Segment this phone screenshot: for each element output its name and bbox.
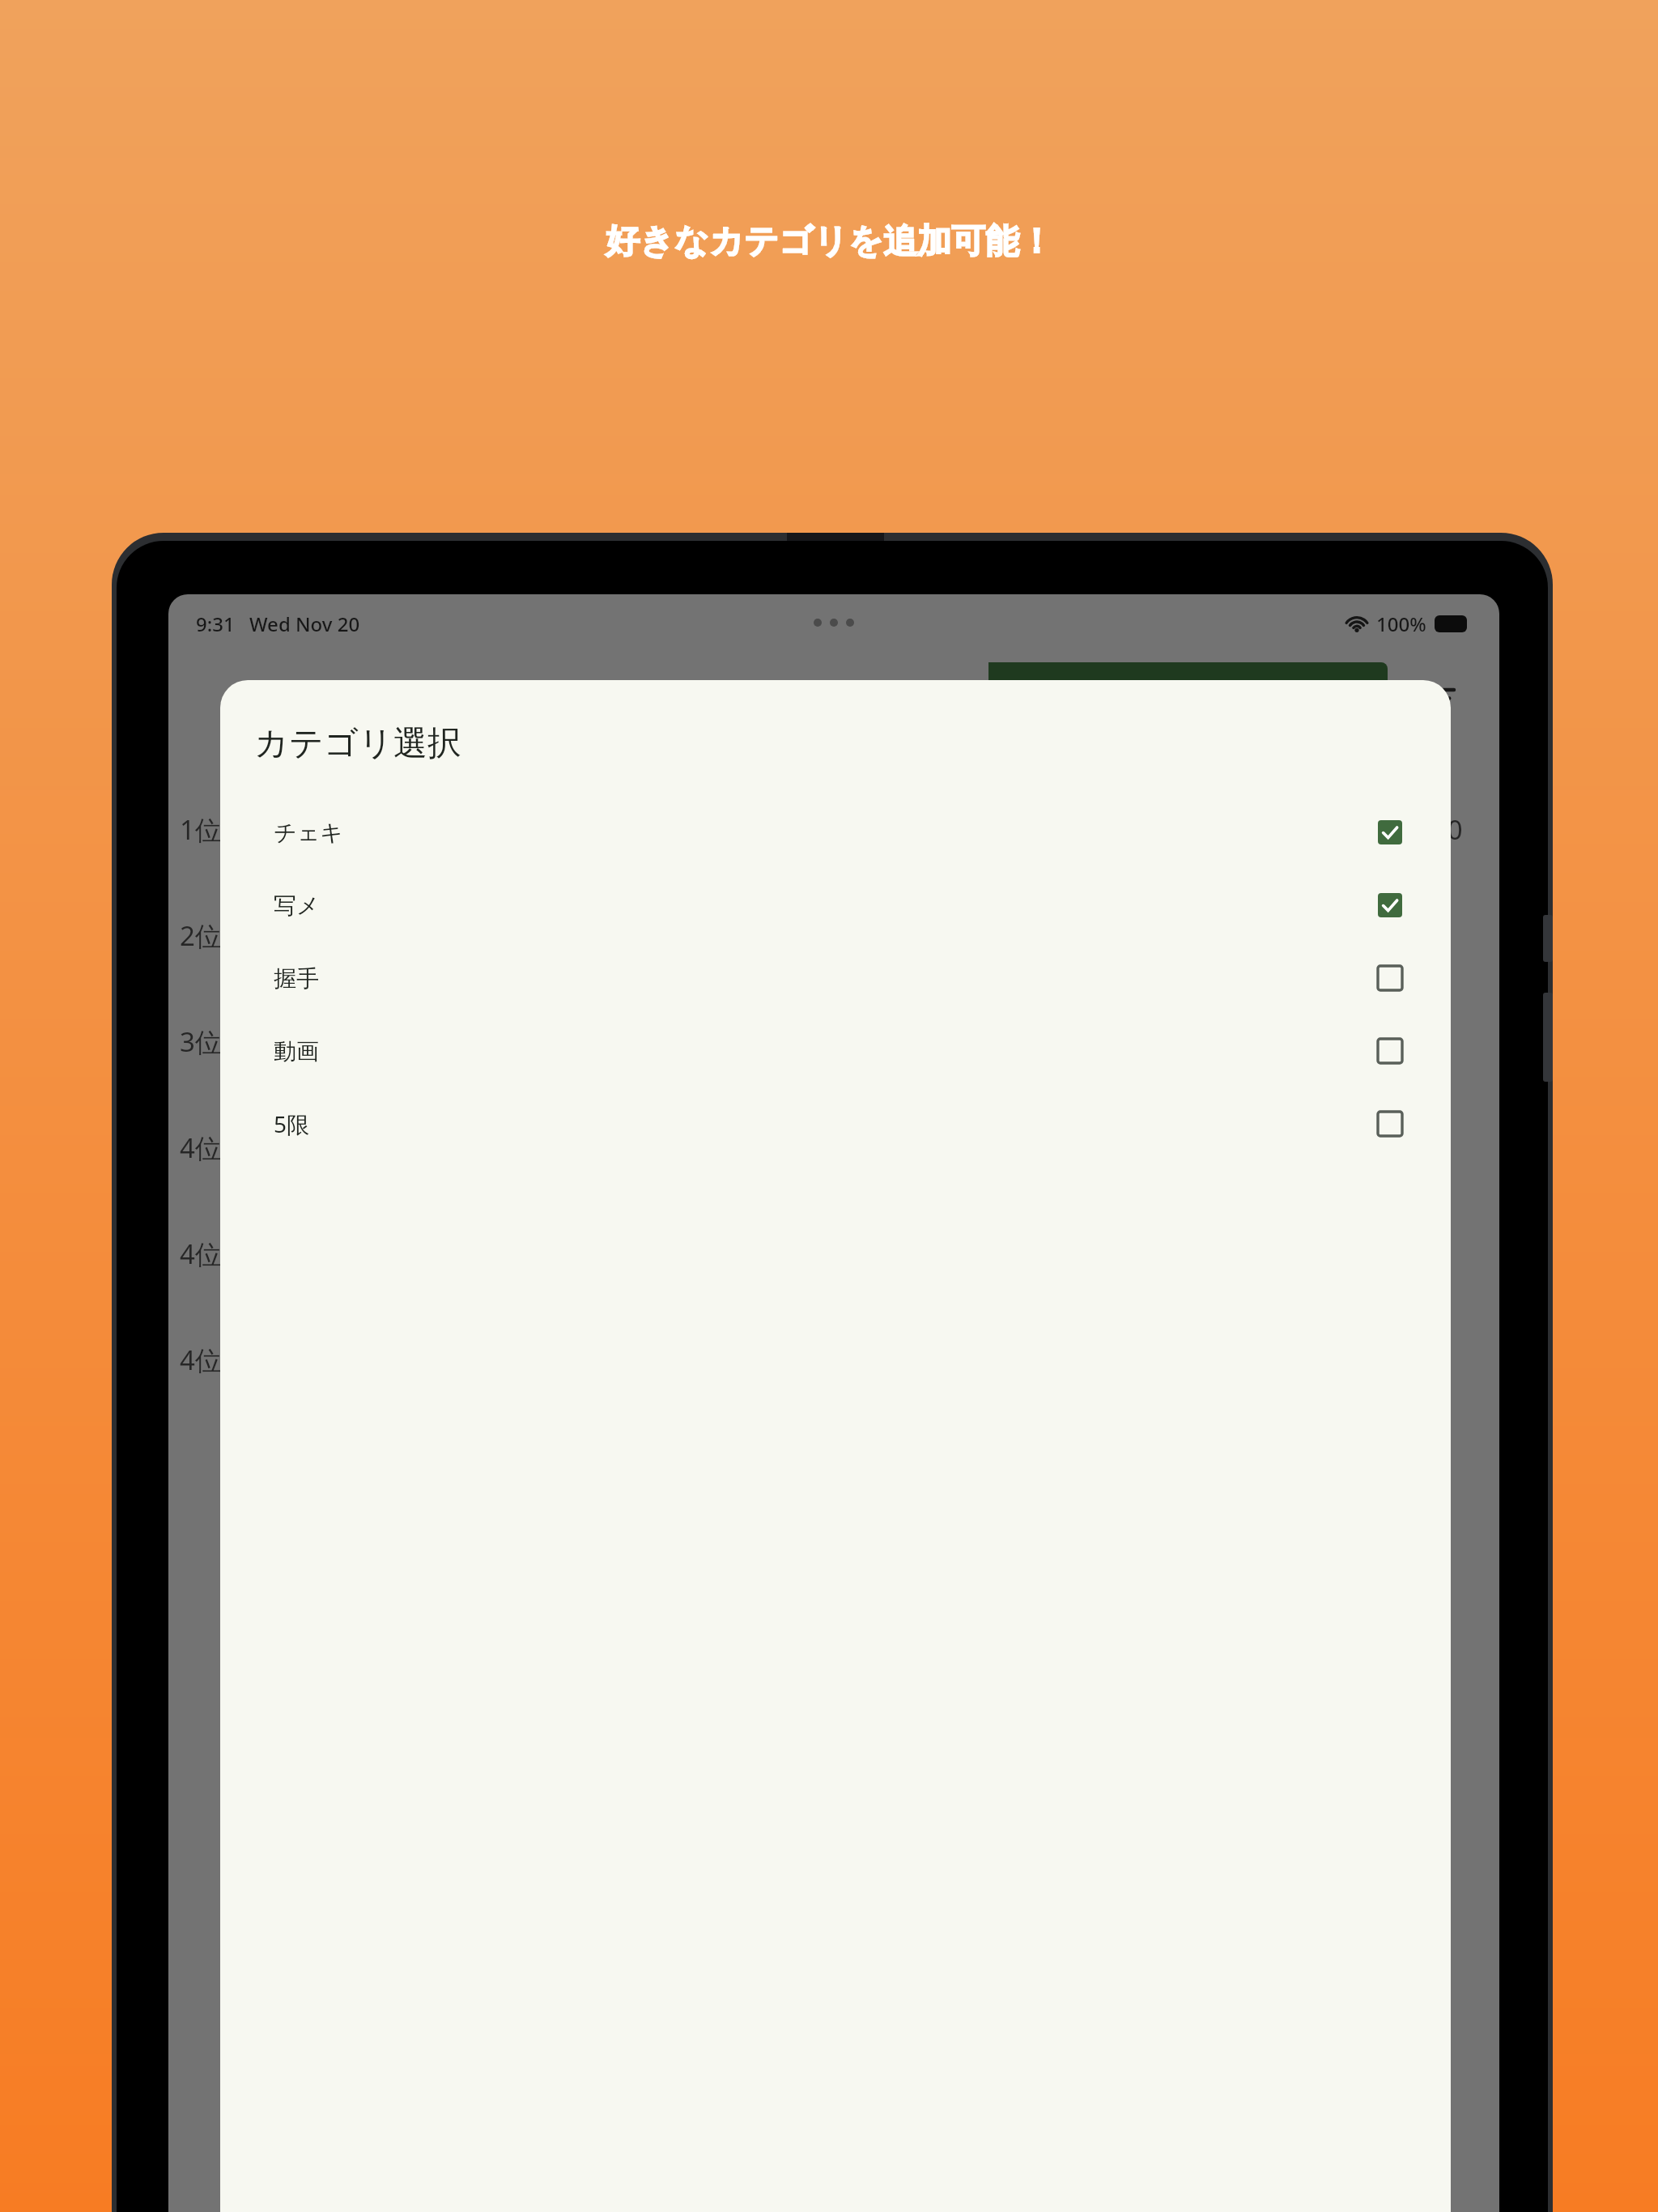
button[interactable]: [988, 662, 1388, 732]
staticText: 9:31: [196, 610, 235, 637]
staticText: チェキ: [274, 819, 343, 847]
staticText: Wed Nov 20: [249, 610, 360, 637]
staticText: 1位: [180, 811, 222, 848]
staticText: 2位: [180, 917, 222, 954]
staticText: 3位: [180, 1023, 222, 1060]
staticText: 100%: [1376, 610, 1426, 637]
button[interactable]: 写メ: [220, 869, 1451, 942]
button[interactable]: 5限: [220, 1087, 1451, 1160]
button[interactable]: 動画: [220, 1015, 1451, 1087]
button[interactable]: [589, 662, 988, 732]
staticText: 写メ: [274, 891, 320, 920]
staticText: 握手: [274, 964, 319, 993]
staticText: 4位: [180, 1236, 222, 1272]
button[interactable]: 握手: [220, 942, 1451, 1015]
staticText: 4位: [180, 1129, 222, 1166]
button[interactable]: Filter: [1405, 664, 1473, 732]
staticText: 好きなカテゴリを追加可能！: [606, 220, 1053, 263]
button[interactable]: [189, 662, 589, 732]
button[interactable]: チェキ: [220, 796, 1451, 869]
staticText: 4位: [180, 1342, 222, 1378]
staticText: 1.0: [1425, 811, 1463, 848]
staticText: 5限: [274, 1108, 310, 1139]
staticText: 人）: [1414, 763, 1462, 793]
staticText: 動画: [274, 1037, 319, 1066]
staticText: カテゴリ選択: [254, 722, 461, 765]
